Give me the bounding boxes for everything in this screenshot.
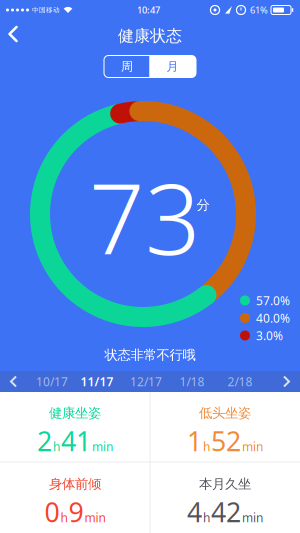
staticText: 分 — [196, 197, 209, 213]
staticText: 61% — [250, 4, 268, 16]
button[interactable]: 2/18 — [223, 371, 256, 392]
button[interactable]: 12/17 — [126, 371, 166, 392]
staticText: 52 — [211, 423, 241, 459]
staticText: 10/17 — [36, 373, 68, 389]
staticText: h — [203, 439, 210, 455]
button[interactable]: Next — [279, 374, 293, 389]
staticText: h — [60, 510, 67, 526]
staticText: 低头坐姿 — [199, 405, 251, 421]
staticText: 42 — [211, 494, 241, 530]
staticText: 中国移动 — [32, 6, 60, 14]
staticText: 12/17 — [130, 373, 162, 389]
staticText: 9 — [68, 494, 83, 530]
staticText: 本月久坐 — [199, 476, 251, 492]
staticText: 2/18 — [227, 373, 252, 389]
staticText: 10:47 — [137, 4, 160, 16]
button[interactable]: 1/18 — [175, 371, 208, 392]
staticText: 状态非常不行哦 — [104, 347, 195, 363]
staticText: min — [242, 439, 263, 455]
staticText: 40.0% — [256, 310, 290, 326]
button[interactable]: Back — [0, 21, 26, 47]
staticText: 月 — [166, 59, 178, 74]
button[interactable]: 月 — [149, 56, 195, 77]
staticText: 健康状态 — [118, 26, 182, 46]
staticText: 0 — [44, 494, 59, 530]
staticText: 41 — [61, 423, 91, 459]
button[interactable]: Previous — [7, 374, 21, 389]
staticText: min — [92, 439, 113, 455]
staticText: h — [53, 439, 60, 455]
staticText: 3.0% — [256, 327, 283, 343]
staticText: 周 — [121, 59, 133, 74]
staticText: 1 — [187, 423, 202, 459]
button[interactable]: 周 — [104, 56, 149, 77]
staticText: 73 — [89, 152, 201, 282]
button[interactable]: 11/17 — [76, 371, 117, 392]
staticText: min — [84, 510, 105, 526]
staticText: 11/17 — [80, 373, 113, 389]
staticText: h — [203, 510, 210, 526]
staticText: 健康坐姿 — [49, 405, 101, 421]
staticText: 57.0% — [256, 292, 290, 308]
staticText: 2 — [37, 423, 52, 459]
staticText: 身体前倾 — [49, 476, 101, 492]
button[interactable]: 10/17 — [32, 371, 72, 392]
staticText: 4 — [187, 494, 202, 530]
staticText: 1/18 — [179, 373, 204, 389]
staticText: min — [242, 510, 263, 526]
